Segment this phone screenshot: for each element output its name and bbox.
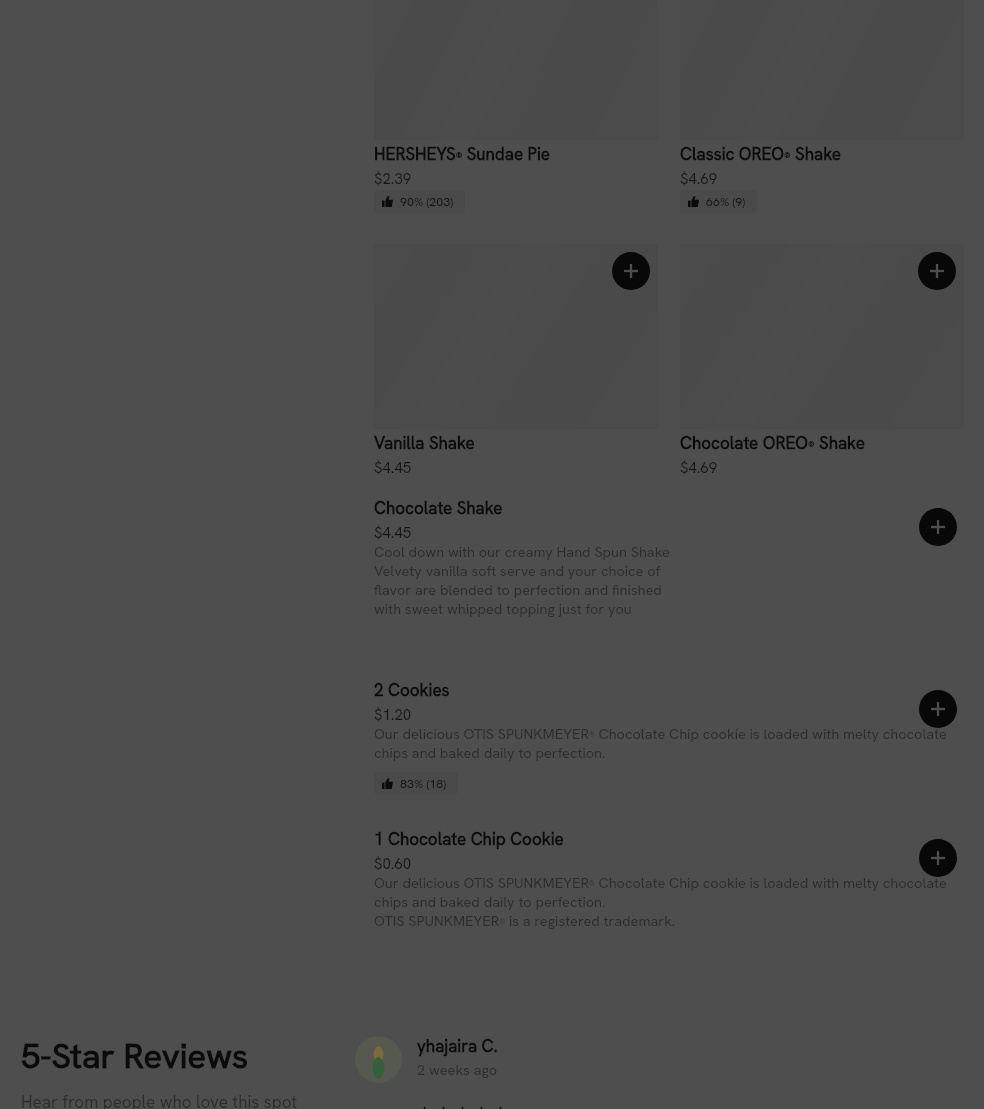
button[interactable]: Add to order [919,839,957,877]
button[interactable]: 2 Cookies [0,680,984,795]
staticText: 66% (9) [706,194,746,209]
staticText: 2 Cookies [374,680,450,700]
button[interactable]: 66% (9) [680,190,757,213]
staticText: Our delicious OTIS SPUNKMEYER® Chocolate… [374,873,954,930]
staticText: $4.69 [680,459,718,477]
staticText: 2 weeks ago [417,1062,498,1079]
button[interactable]: Add to order [919,508,957,546]
staticText: Hear from people who love this spot [21,1092,298,1109]
button[interactable]: Add to order [918,252,956,290]
staticText: 90% (203) [400,194,454,209]
staticText: 5-Star Reviews [21,1036,249,1077]
button[interactable]: yhajaira C. [355,1036,512,1109]
staticText: yhajaira C. [417,1036,498,1056]
staticText: $2.39 [374,170,412,188]
staticText: Vanilla Shake [374,433,475,453]
button[interactable]: Add to order [374,244,658,477]
staticText: $4.45 [374,459,412,477]
staticText: Cool down with our creamy Hand Spun Shak… [374,542,674,618]
button[interactable]: 83% (18) [374,772,458,795]
staticText: Our delicious OTIS SPUNKMEYER® Chocolate… [374,724,954,762]
button[interactable]: Chocolate Shake [0,498,984,618]
staticText: Chocolate Shake [374,498,503,518]
staticText: $4.69 [680,170,718,188]
staticText: 83% (18) [400,776,447,791]
staticText: $1.20 [374,706,412,724]
button[interactable]: 1 Chocolate Chip Cookie [0,829,984,930]
button[interactable]: Add to order [680,244,964,477]
button[interactable]: Add to order [612,252,650,290]
staticText: Chocolate OREO® Shake [680,433,865,453]
button[interactable]: Add to order [919,690,957,728]
button[interactable]: Classic OREO® Shake [680,0,964,213]
button[interactable]: HERSHEYS® Sundae Pie [374,0,658,213]
staticText: $0.60 [374,855,412,873]
button[interactable]: 90% (203) [374,190,465,213]
staticText: 1 Chocolate Chip Cookie [374,829,564,849]
staticText: Classic OREO® Shake [680,144,841,164]
staticText: HERSHEYS® Sundae Pie [374,144,551,164]
staticText: $4.45 [374,524,412,542]
